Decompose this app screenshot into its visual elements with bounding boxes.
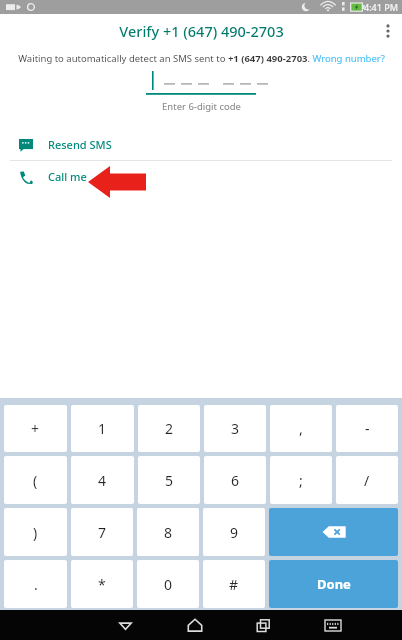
button[interactable]: 2	[138, 405, 200, 452]
staticText: 4:41 PM	[364, 1, 398, 13]
button[interactable]: ,	[270, 405, 332, 452]
staticText: (	[33, 471, 38, 490]
button[interactable]: Back	[91, 610, 160, 640]
staticText: Verify +1 (647) 490-2703	[119, 21, 284, 41]
staticText: 7	[98, 523, 107, 542]
button[interactable]: *	[71, 560, 133, 608]
staticText: ;	[299, 471, 303, 490]
button[interactable]: (	[4, 456, 67, 504]
button[interactable]: 1	[71, 405, 134, 452]
button[interactable]: 5	[138, 456, 200, 504]
staticText: Resend SMS	[48, 137, 112, 152]
button[interactable]: 7	[71, 508, 133, 556]
staticText: 4	[98, 471, 107, 490]
staticText: -	[365, 419, 370, 438]
button[interactable]: 0	[137, 560, 199, 608]
button[interactable]: )	[4, 508, 67, 556]
staticText: 2	[165, 419, 174, 438]
button[interactable]: 3	[204, 405, 266, 452]
staticText: Done	[317, 575, 351, 593]
button[interactable]: Backspace	[269, 508, 398, 556]
staticText: #	[229, 575, 239, 594]
staticText: 5	[165, 471, 174, 490]
button[interactable]: +	[4, 405, 67, 452]
staticText: Enter 6-digit code	[162, 100, 241, 113]
button[interactable]: -	[336, 405, 398, 452]
button[interactable]: 9	[203, 508, 265, 556]
button[interactable]: Resend SMS	[0, 129, 402, 160]
button[interactable]: Keyboard	[298, 610, 367, 640]
button[interactable]: 4	[71, 456, 134, 504]
button[interactable]: /	[336, 456, 398, 504]
button[interactable]: Recent apps	[229, 610, 298, 640]
staticText: 8	[164, 523, 173, 542]
button[interactable]: Home	[160, 610, 229, 640]
staticText: 9	[230, 523, 239, 542]
staticText: 1	[98, 419, 107, 438]
button[interactable]: 6	[204, 456, 266, 504]
staticText: Waiting to automatically detect an SMS s…	[18, 52, 385, 65]
staticText: .	[34, 575, 38, 594]
button[interactable]: Call me	[0, 161, 402, 192]
button[interactable]: .	[4, 560, 67, 608]
button[interactable]: Done	[269, 560, 398, 608]
staticText: 0	[164, 575, 173, 594]
staticText: ,	[299, 419, 303, 438]
staticText: *	[98, 575, 106, 594]
button[interactable]: More options	[374, 14, 402, 47]
staticText: +	[31, 419, 40, 438]
button[interactable]: 8	[137, 508, 199, 556]
staticText: /	[364, 471, 370, 490]
button[interactable]: ;	[270, 456, 332, 504]
staticText: )	[33, 523, 38, 542]
staticText: Call me	[48, 169, 87, 184]
staticText: 3	[231, 419, 240, 438]
staticText: 6	[231, 471, 240, 490]
button[interactable]: #	[203, 560, 265, 608]
